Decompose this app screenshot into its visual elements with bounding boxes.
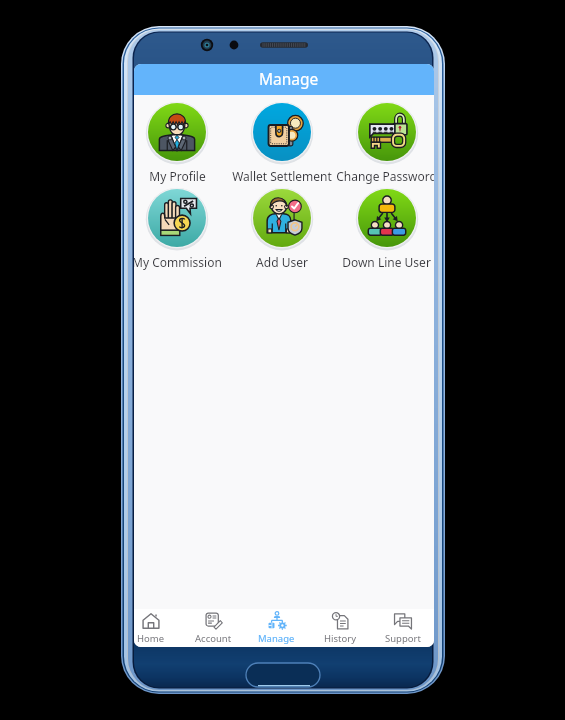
staticText: Change Password [336, 168, 434, 184]
staticText: My Profile [149, 168, 206, 184]
staticText: Add User [256, 254, 308, 270]
button[interactable]: Down Line User [334, 186, 434, 270]
button[interactable]: Home [134, 609, 182, 647]
staticText: Support [385, 632, 421, 645]
button[interactable]: Add User [229, 186, 334, 270]
button[interactable]: My Profile [134, 100, 229, 184]
button[interactable]: Change Password [334, 100, 434, 184]
staticText: Manage [258, 632, 295, 645]
button[interactable]: History [308, 609, 371, 647]
staticText: Home [137, 632, 165, 645]
staticText: History [324, 632, 356, 645]
button[interactable]: Manage [245, 609, 308, 647]
staticText: Account [195, 632, 232, 645]
button[interactable]: Account [182, 609, 245, 647]
button[interactable]: My Commission [134, 186, 229, 270]
staticText: Wallet Settlement [232, 168, 332, 184]
staticText: Manage [259, 68, 319, 89]
staticText: Down Line User [342, 254, 431, 270]
button[interactable]: Support [371, 609, 434, 647]
button[interactable]: Wallet Settlement [229, 100, 334, 184]
staticText: My Commission [134, 254, 222, 270]
